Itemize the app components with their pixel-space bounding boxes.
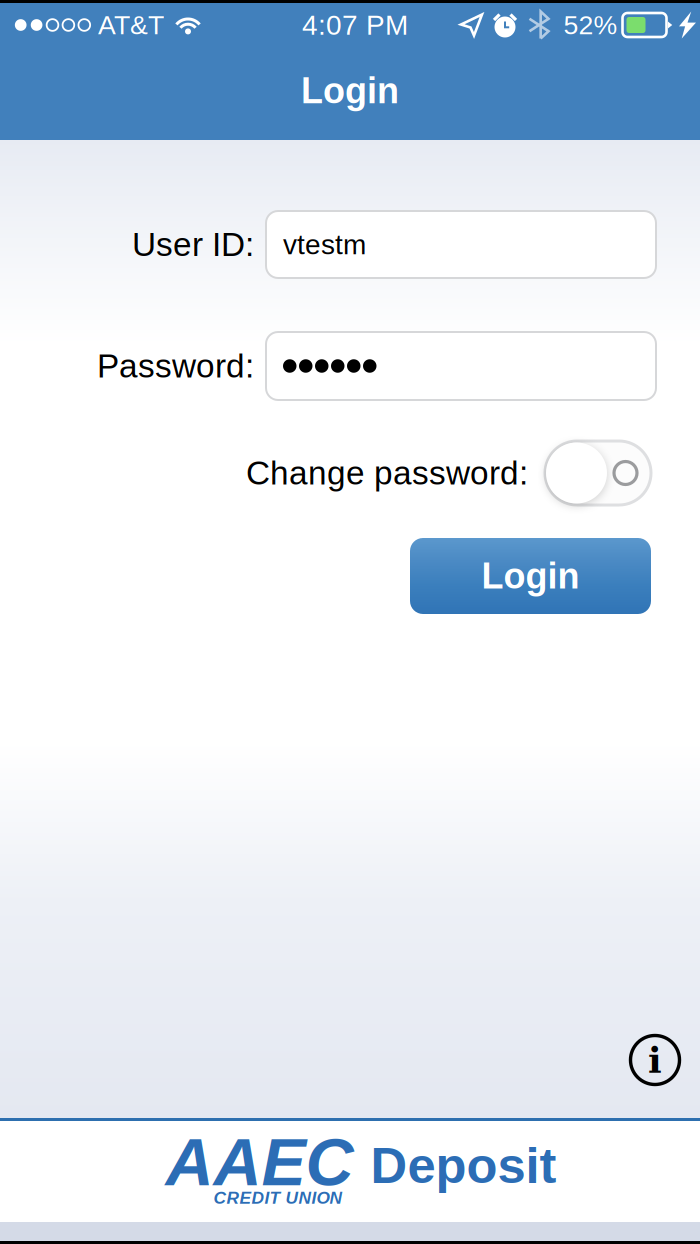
staticText: Login xyxy=(301,71,399,111)
staticText: AT&T xyxy=(98,10,164,40)
staticText: CREDIT UNION xyxy=(213,1188,342,1207)
button[interactable]: Change password xyxy=(545,441,651,505)
button[interactable]: Login xyxy=(410,538,651,614)
staticText: Password: xyxy=(97,347,254,385)
staticText: i xyxy=(648,1039,662,1081)
button[interactable]: Password xyxy=(266,332,656,400)
staticText: Login xyxy=(481,556,579,596)
textField[interactable]: vtestm xyxy=(266,211,656,278)
staticText: Deposit xyxy=(370,1137,556,1194)
staticText: vtestm xyxy=(283,229,366,260)
staticText: AAEC xyxy=(165,1125,353,1199)
button[interactable]: Information xyxy=(625,1030,685,1090)
staticText: Change password: xyxy=(246,454,528,492)
staticText: User ID: xyxy=(132,226,254,263)
button[interactable]: vtestm xyxy=(266,211,656,278)
secureTextField[interactable]: Password xyxy=(266,332,656,400)
staticText: 4:07 PM xyxy=(302,9,408,41)
staticText: 52% xyxy=(563,10,617,40)
